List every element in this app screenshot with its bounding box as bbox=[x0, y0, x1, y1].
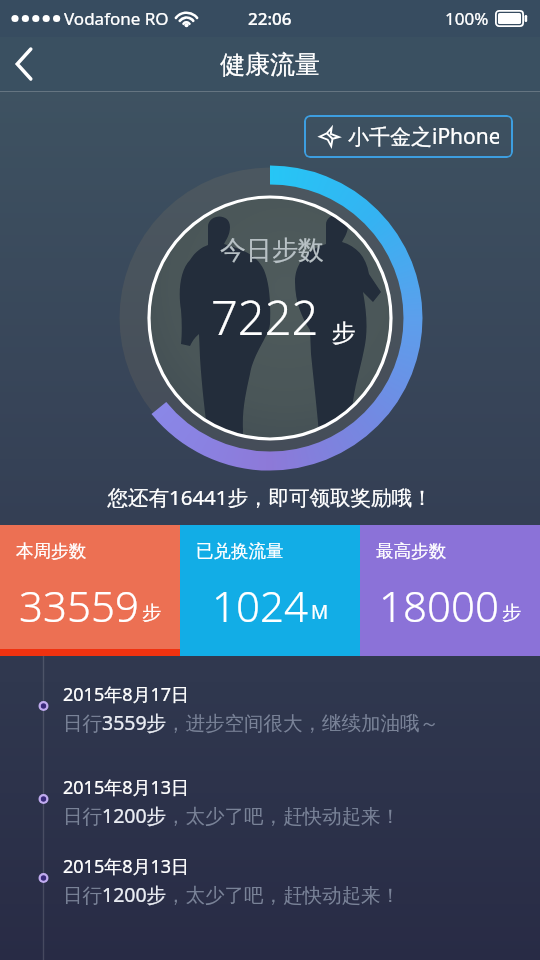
staticText: 今日步数 bbox=[220, 234, 324, 267]
staticText: 本周步数 bbox=[16, 540, 86, 562]
button[interactable]: 2015年8月13日 bbox=[0, 775, 540, 829]
staticText: 步 bbox=[502, 601, 521, 625]
staticText: 您还有16441步，即可领取奖励哦！ bbox=[0, 483, 540, 511]
button[interactable]: 已兑换流量 bbox=[180, 525, 360, 656]
staticText: 22:06 bbox=[248, 7, 292, 30]
staticText: Vodafone RO bbox=[64, 7, 169, 30]
staticText: 7222 bbox=[211, 285, 319, 349]
staticText: 已兑换流量 bbox=[196, 540, 284, 562]
button[interactable]: Back bbox=[0, 38, 52, 90]
staticText: 健康流量 bbox=[220, 49, 320, 80]
staticText: 2015年8月13日 bbox=[63, 775, 190, 800]
button[interactable]: 本周步数 bbox=[0, 525, 180, 656]
staticText: 1024 bbox=[212, 577, 308, 634]
staticText: 步 bbox=[142, 601, 161, 625]
staticText: 日行1200步，太少了吧，赶快动起来！ bbox=[63, 881, 401, 908]
staticText: 2015年8月17日 bbox=[63, 682, 190, 707]
staticText: 最高步数 bbox=[376, 540, 446, 562]
staticText: 日行3559步，进步空间很大，继续加油哦～ bbox=[63, 709, 440, 736]
button[interactable]: 最高步数 bbox=[360, 525, 540, 656]
button[interactable]: 小千金之iPhone bbox=[304, 115, 513, 158]
staticText: 33559 bbox=[19, 577, 139, 634]
staticText: 小千金之iPhone bbox=[348, 122, 499, 151]
staticText: 2015年8月13日 bbox=[63, 854, 190, 879]
staticText: 100% bbox=[445, 7, 489, 30]
button[interactable]: 2015年8月13日 bbox=[0, 854, 540, 908]
staticText: 步 bbox=[332, 318, 356, 348]
button[interactable]: 2015年8月17日 bbox=[0, 682, 540, 736]
staticText: 日行1200步，太少了吧，赶快动起来！ bbox=[63, 802, 401, 829]
staticText: M bbox=[311, 599, 329, 625]
staticText: 18000 bbox=[379, 577, 499, 634]
